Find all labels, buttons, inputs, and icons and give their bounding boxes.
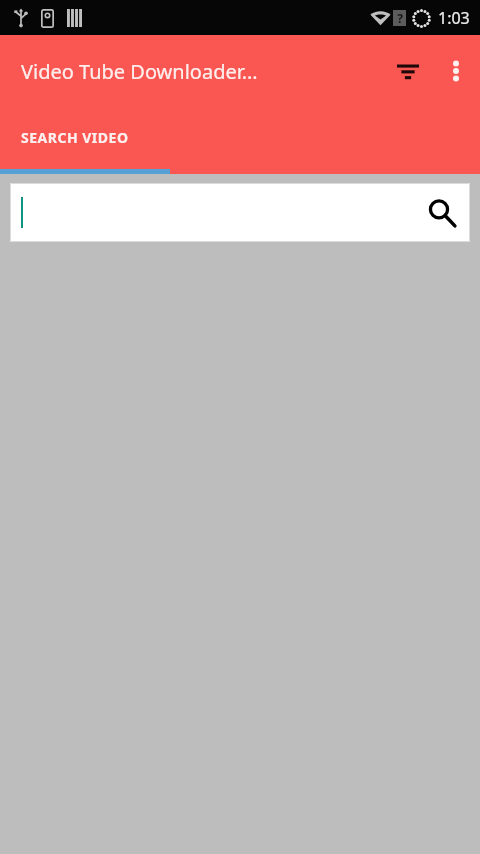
staticText: SEARCH VIDEO [21, 128, 129, 147]
button[interactable]: Filter [384, 47, 432, 95]
staticText: Video Tube Downloader… [21, 58, 258, 85]
staticText: ? [397, 10, 403, 26]
button[interactable]: SEARCH VIDEO [0, 107, 170, 174]
button[interactable]: More options [432, 47, 480, 95]
button[interactable]: Search [10, 183, 470, 242]
staticText: 1:03 [438, 7, 470, 29]
button[interactable]: Search [424, 195, 460, 231]
